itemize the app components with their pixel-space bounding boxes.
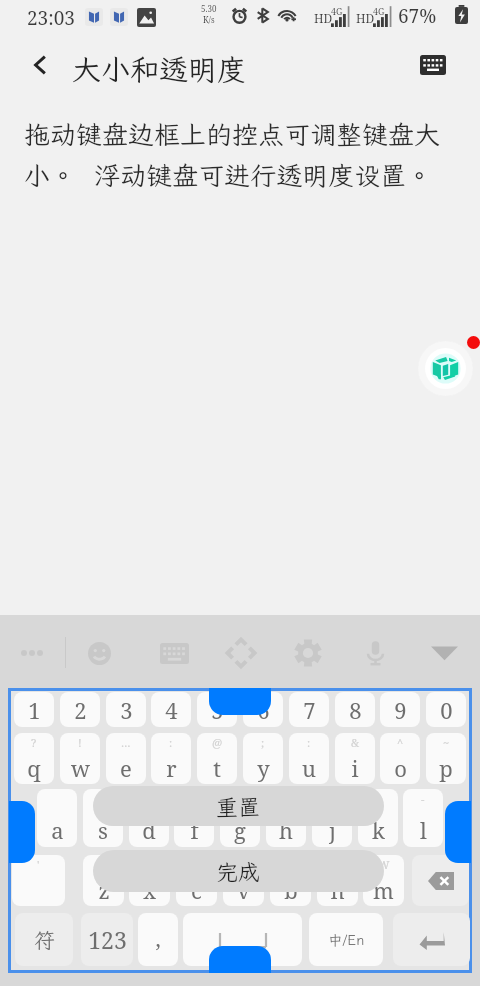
staticText: ; — [261, 735, 265, 750]
staticText: a — [51, 815, 64, 845]
button[interactable]: v — [223, 855, 264, 906]
staticText: y — [257, 753, 270, 783]
button[interactable]: , — [138, 913, 178, 966]
staticText: 4G — [373, 5, 385, 17]
staticText: 4 — [165, 695, 178, 725]
staticText: 1 — [28, 695, 41, 725]
button[interactable]: 9 — [380, 692, 420, 727]
button[interactable]: u — [289, 733, 329, 784]
button[interactable]: 7 — [289, 692, 329, 727]
staticText: e — [120, 753, 132, 783]
button[interactable]: 0 — [426, 692, 466, 727]
button[interactable]: q — [14, 733, 54, 784]
button[interactable]: enter — [393, 913, 470, 966]
button[interactable]: 完成 — [93, 850, 384, 892]
staticText: 23:03 — [27, 5, 75, 31]
staticText: x — [143, 875, 156, 905]
button[interactable]: z — [83, 855, 124, 906]
button[interactable]: y — [243, 733, 283, 784]
button[interactable]: Resize right — [445, 801, 471, 863]
staticText: + — [375, 791, 382, 806]
button[interactable]: b — [270, 855, 311, 906]
button[interactable]: a — [37, 789, 77, 847]
button[interactable]: 8 — [335, 692, 375, 727]
button[interactable]: n — [317, 855, 358, 906]
button[interactable]: space — [183, 913, 302, 966]
button[interactable]: i — [335, 733, 375, 784]
button[interactable]: j — [312, 789, 352, 847]
button[interactable]: g — [220, 789, 260, 847]
staticText: v — [237, 875, 250, 905]
button[interactable]: 4 — [151, 692, 191, 727]
staticText: 9 — [394, 695, 407, 725]
button[interactable]: h — [266, 789, 306, 847]
button[interactable]: Resize bottom — [209, 946, 271, 973]
button[interactable]: Resize left — [9, 801, 35, 863]
button[interactable]: 符 — [15, 913, 73, 966]
button[interactable]: Resize top — [209, 688, 271, 715]
button[interactable]: 1 — [14, 692, 54, 727]
button[interactable]: 2 — [60, 692, 100, 727]
button[interactable]: p — [426, 733, 466, 784]
button[interactable]: shift — [12, 855, 65, 906]
button[interactable]: back — [412, 855, 469, 906]
button[interactable]: 3 — [106, 692, 146, 727]
staticText: : — [169, 735, 173, 750]
staticText: g — [234, 815, 246, 845]
staticText: q — [27, 753, 41, 783]
button[interactable]: m — [363, 855, 404, 906]
staticText: 拖动键盘边框上的控点可调整键盘大小。 浮动键盘可进行透明度设置。 — [24, 117, 449, 193]
button[interactable]: Keyboard — [414, 46, 452, 84]
button[interactable]: k — [358, 789, 398, 847]
staticText: i — [351, 753, 359, 783]
staticText: 67% — [398, 3, 437, 29]
staticText: ~ — [443, 735, 450, 750]
staticText: K/s — [203, 14, 215, 25]
button[interactable]: More options — [14, 638, 50, 668]
staticText: ! — [78, 735, 82, 750]
staticText: o — [394, 753, 407, 783]
button[interactable]: 中/En — [309, 913, 383, 966]
button[interactable]: s — [83, 789, 123, 847]
staticText: j — [329, 815, 336, 845]
button[interactable]: Keyboard layout — [158, 638, 190, 668]
staticText: w — [71, 753, 90, 783]
button[interactable]: o — [380, 733, 420, 784]
button[interactable]: w — [60, 733, 100, 784]
staticText: ? — [31, 735, 37, 750]
staticText: … — [121, 735, 131, 750]
staticText: 5 — [211, 695, 224, 725]
button[interactable]: 5 — [197, 692, 237, 727]
button[interactable]: 6 — [243, 692, 283, 727]
staticText: u — [302, 753, 316, 783]
button[interactable]: 重置 — [93, 786, 384, 826]
staticText: 重置 — [216, 792, 261, 821]
button[interactable]: f — [174, 789, 214, 847]
button[interactable]: l — [403, 789, 443, 847]
button[interactable]: t — [197, 733, 237, 784]
button[interactable]: Settings — [292, 637, 324, 669]
staticText: z — [98, 875, 110, 905]
button[interactable]: Back — [22, 47, 58, 83]
button[interactable]: d — [129, 789, 169, 847]
staticText: k — [372, 815, 385, 845]
staticText: 完成 — [216, 857, 261, 886]
button[interactable]: r — [151, 733, 191, 784]
button[interactable]: Floating keyboard — [418, 341, 473, 396]
staticText: HD — [314, 10, 333, 26]
button[interactable]: 123 — [81, 913, 133, 966]
button[interactable]: Hide keyboard — [430, 643, 458, 663]
staticText: d — [142, 815, 156, 845]
staticText: 符 — [34, 926, 55, 954]
button[interactable]: Emoji — [83, 637, 115, 669]
staticText: 中/En — [328, 931, 365, 949]
button[interactable]: e — [106, 733, 146, 784]
staticText: ' — [37, 857, 40, 872]
button[interactable]: x — [129, 855, 170, 906]
staticText: p — [439, 753, 453, 783]
button[interactable]: c — [176, 855, 217, 906]
button[interactable]: Move keyboard — [225, 637, 257, 669]
staticText: 5.30 — [201, 3, 217, 14]
button[interactable]: Voice input — [361, 637, 389, 669]
